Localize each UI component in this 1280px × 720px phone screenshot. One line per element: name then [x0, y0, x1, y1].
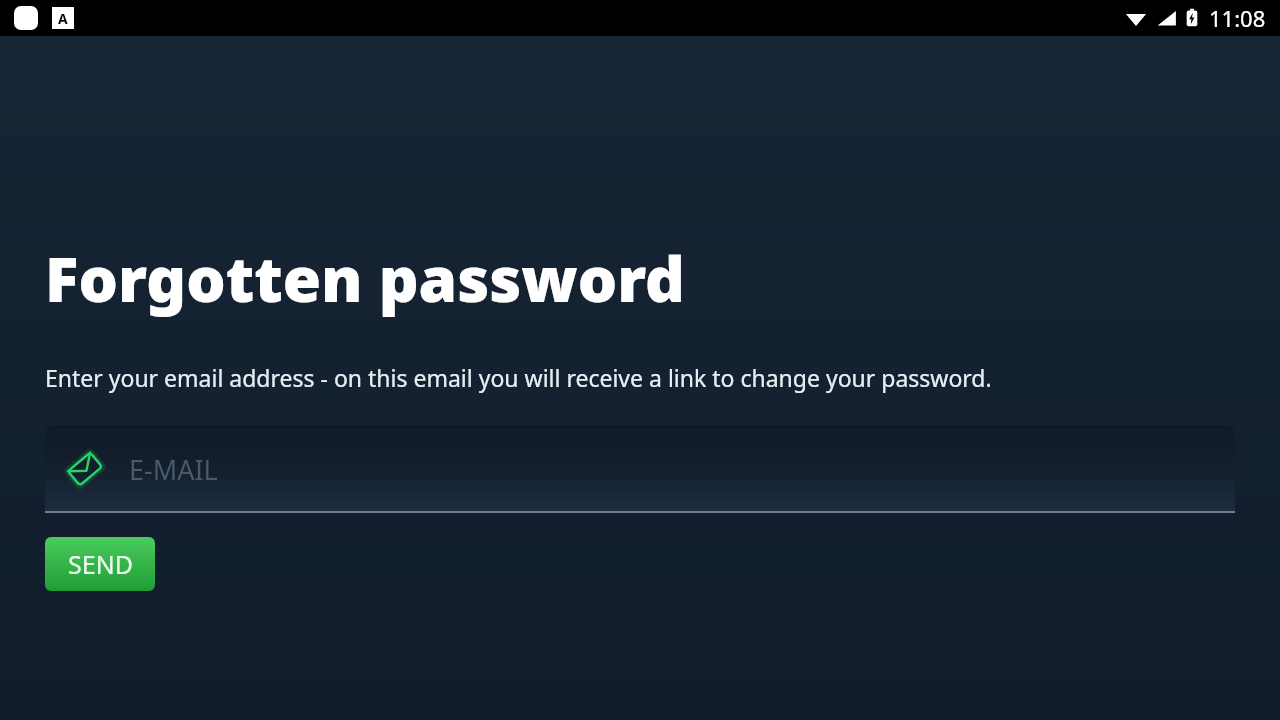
staticText: SEND	[68, 547, 133, 581]
staticText: Forgotten password	[45, 236, 685, 320]
button[interactable]: E-MAIL	[45, 425, 1235, 513]
staticText: A	[58, 9, 68, 28]
button[interactable]: SEND	[45, 537, 155, 591]
staticText: E-MAIL	[129, 451, 218, 488]
staticText: 11:08	[1209, 3, 1266, 33]
staticText: Enter your email address - on this email…	[45, 362, 992, 393]
